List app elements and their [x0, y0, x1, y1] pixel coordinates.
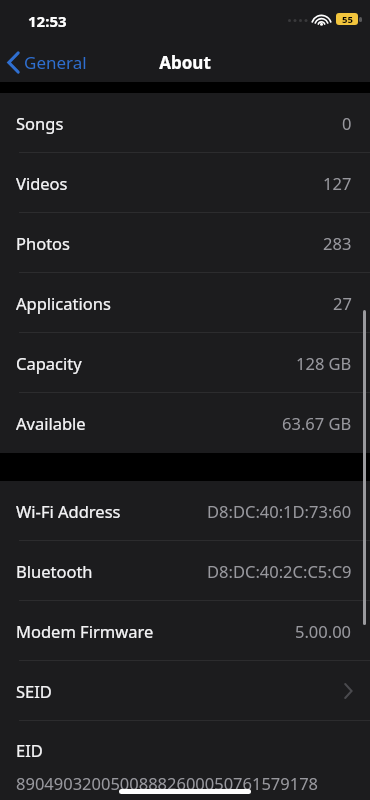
staticText: 283 — [323, 232, 352, 254]
staticText: Videos — [16, 172, 68, 194]
staticText: Songs — [16, 112, 64, 134]
staticText: Available — [16, 412, 86, 434]
button[interactable]: Songs — [0, 93, 370, 153]
staticText: Capacity — [16, 352, 82, 374]
staticText: 0 — [342, 112, 352, 134]
button[interactable]: Videos — [0, 153, 370, 213]
staticText: D8:DC:40:1D:73:60 — [207, 500, 352, 522]
staticText: D8:DC:40:2C:C5:C9 — [207, 560, 352, 582]
button[interactable]: Modem Firmware — [0, 601, 370, 661]
staticText: Bluetooth — [16, 560, 93, 582]
staticText: About — [159, 51, 211, 74]
button[interactable]: Available — [0, 393, 370, 453]
staticText: 127 — [323, 172, 352, 194]
staticText: 63.67 GB — [282, 412, 352, 434]
staticText: SEID — [16, 680, 52, 702]
staticText: 128 GB — [296, 352, 352, 374]
button[interactable]: Capacity — [0, 333, 370, 393]
staticText: Modem Firmware — [16, 620, 154, 642]
staticText: 89049032005008882600050761579178 — [16, 772, 319, 794]
staticText: 5.00.00 — [295, 620, 352, 642]
staticText: 12:53 — [28, 11, 67, 31]
staticText: General — [24, 51, 87, 74]
staticText: 27 — [333, 292, 352, 314]
button[interactable]: EID — [0, 721, 370, 800]
button[interactable]: General — [8, 51, 87, 74]
button[interactable]: Wi-Fi Address — [0, 481, 370, 541]
button[interactable]: SEID — [0, 661, 370, 721]
button[interactable]: Photos — [0, 213, 370, 273]
staticText: 55 — [342, 13, 353, 25]
staticText: Photos — [16, 232, 71, 254]
staticText: Applications — [16, 292, 111, 314]
staticText: EID — [16, 739, 43, 761]
staticText: Wi-Fi Address — [16, 500, 121, 522]
button[interactable]: Bluetooth — [0, 541, 370, 601]
button[interactable]: Applications — [0, 273, 370, 333]
